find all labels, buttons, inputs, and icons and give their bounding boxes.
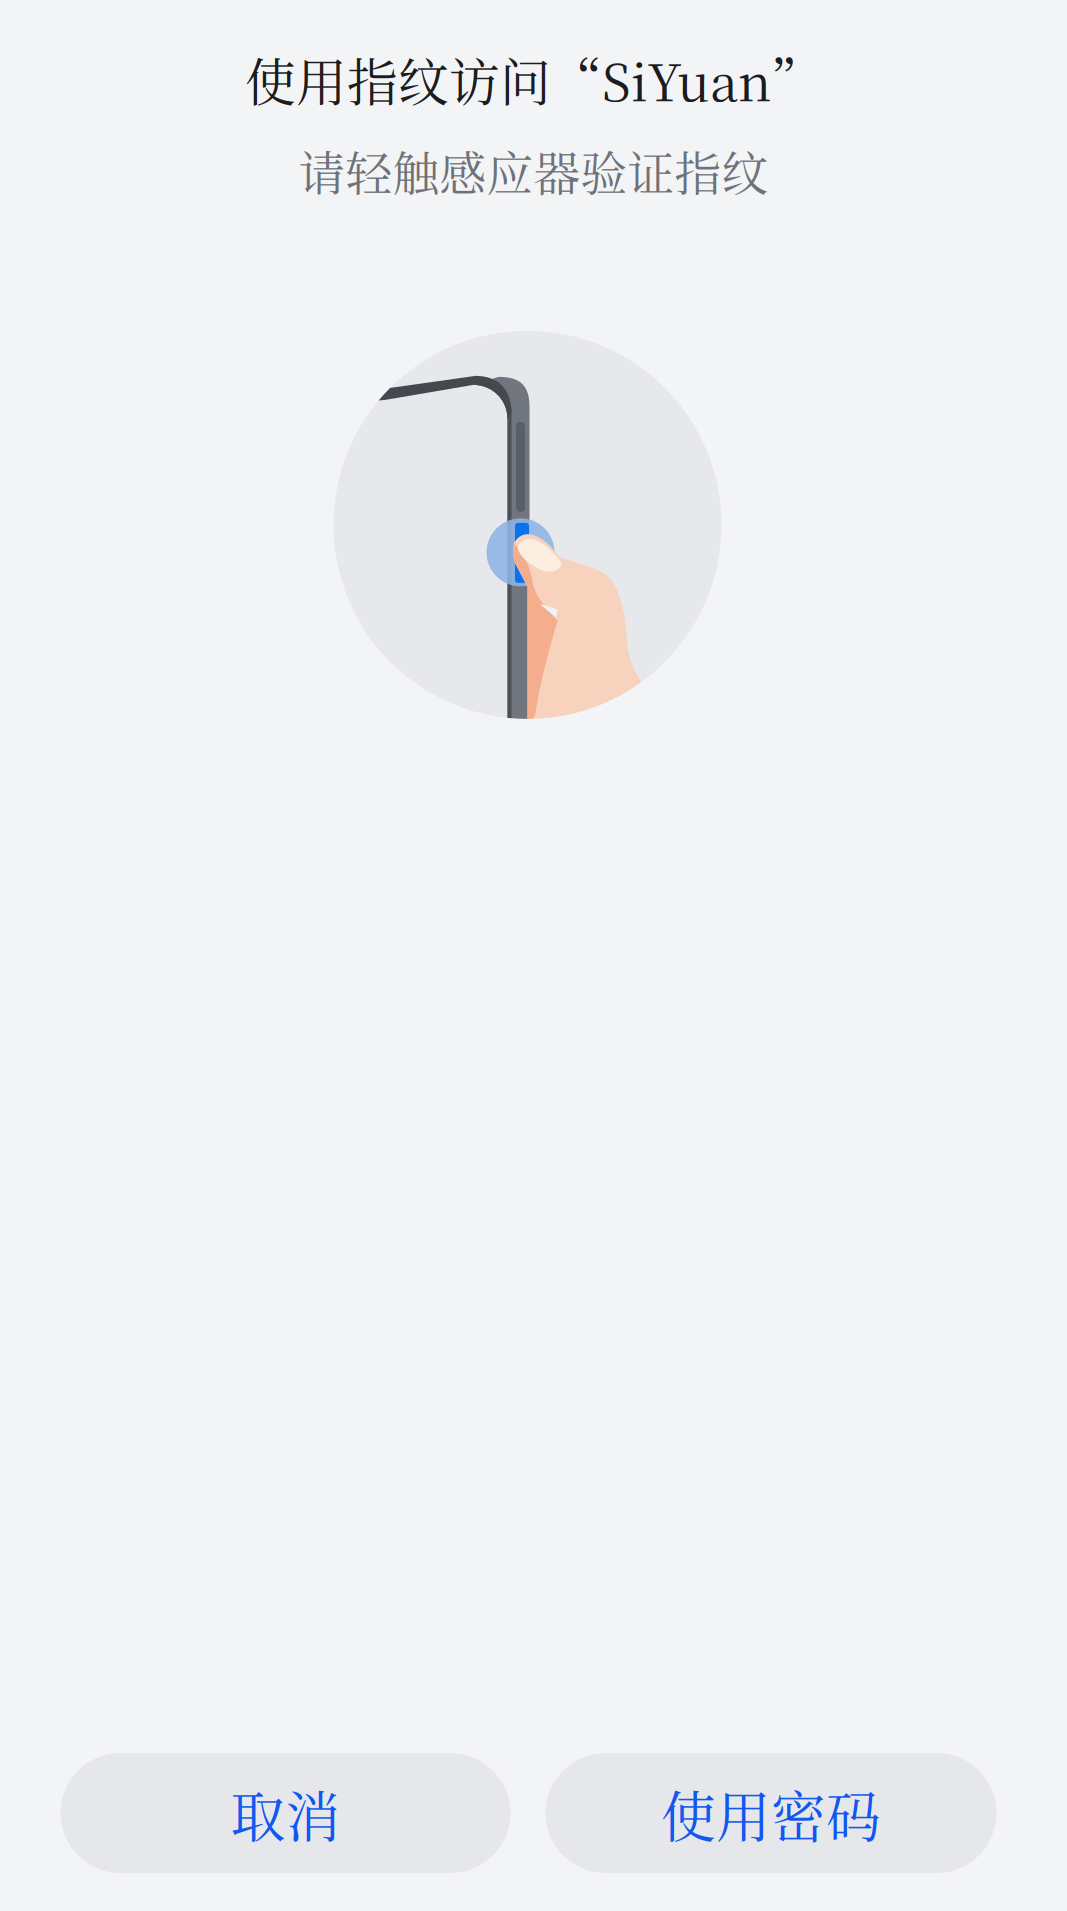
- staticText: 请轻触感应器验证指纹: [298, 137, 768, 204]
- staticText: 取消: [230, 1774, 340, 1852]
- button[interactable]: 使用密码: [545, 1753, 996, 1873]
- staticText: 使用指纹访问“SiYuan”: [245, 43, 822, 116]
- staticText: 使用密码: [661, 1774, 881, 1852]
- button[interactable]: 取消: [60, 1753, 510, 1873]
